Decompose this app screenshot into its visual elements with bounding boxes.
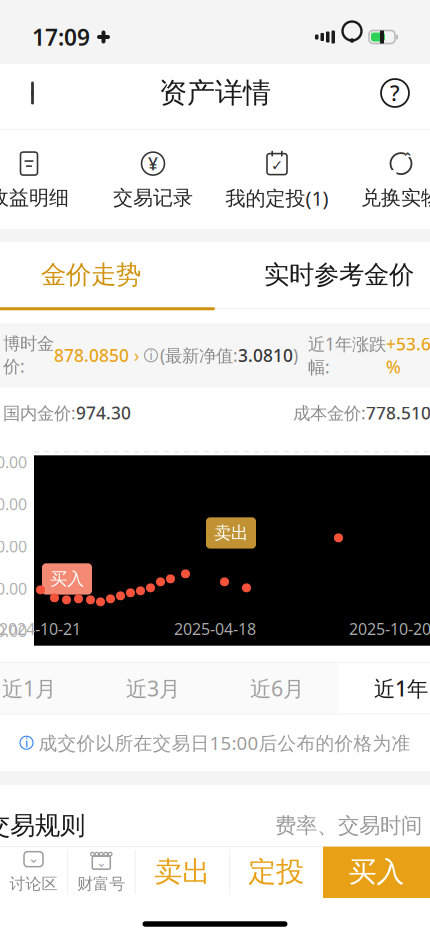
staticText: 1050.00 (0, 451, 27, 472)
button[interactable]: 近1年 (339, 662, 430, 714)
button[interactable]: 近1月 (0, 662, 91, 714)
staticText: › (129, 344, 139, 367)
button[interactable]: 金价走势 (0, 242, 215, 307)
staticText: ✓ (271, 157, 283, 173)
staticText: 近3月 (126, 674, 180, 702)
staticText: 成本金价: (293, 401, 366, 424)
staticText: (最新净值: (160, 344, 238, 367)
staticText: 收益明细 (0, 186, 69, 210)
staticText: 974.30 (76, 401, 131, 424)
button[interactable]: 帮助 (372, 70, 418, 116)
button[interactable]: ⌃ (339, 151, 430, 210)
staticText: 买入 (50, 568, 84, 590)
staticText: 费率、交易时间 (275, 812, 422, 839)
staticText: 2024-10-21 (0, 618, 81, 639)
staticText: 750.00 (0, 536, 27, 557)
staticText: 900.00 (0, 493, 27, 515)
staticText: 财富号 (77, 874, 125, 894)
staticText: +53.62% (386, 332, 430, 378)
staticText: 2025-04-18 (174, 618, 256, 639)
staticText: ⌃ (402, 150, 413, 165)
staticText: ) (293, 344, 298, 367)
staticText: 国内金价: (3, 401, 76, 424)
button[interactable]: 定投 (230, 846, 323, 898)
button[interactable]: 收益明细 (0, 151, 91, 210)
staticText: ¥ (148, 152, 158, 175)
staticText: ⌄ (28, 851, 39, 866)
staticText: 3.0810 (238, 344, 293, 367)
staticText: 878.0850 (54, 344, 129, 367)
button[interactable]: 实时参考金价 (215, 242, 430, 307)
staticText: 450.00 (0, 620, 27, 641)
button[interactable]: ✓ (215, 150, 339, 211)
staticText: 我的定投(1) (225, 185, 328, 211)
staticText: i (149, 347, 152, 363)
staticText: 交易记录 (113, 186, 193, 210)
staticText: i (25, 735, 28, 751)
staticText: 2025-10-20 (349, 618, 430, 639)
staticText: 近1年 (374, 674, 428, 702)
button[interactable]: ⌄ (0, 846, 67, 898)
staticText: 买入 (348, 855, 404, 889)
staticText: 实时参考金价 (264, 259, 414, 290)
staticText: 近1年涨跌幅: (308, 332, 386, 378)
staticText: 成交价以所在交易日15:00后公布的价格为准 (38, 730, 410, 755)
staticText: 近6月 (250, 674, 304, 702)
staticText: ? (390, 79, 400, 107)
button[interactable]: 近6月 (215, 662, 339, 714)
staticText: 778.5106 (366, 401, 430, 424)
staticText: 定投 (248, 855, 304, 889)
staticText: 近1月 (2, 674, 56, 702)
staticText: 卖出 (154, 855, 210, 889)
button[interactable]: 交易规则 (0, 785, 430, 866)
staticText: 资产详情 (159, 76, 271, 110)
button[interactable]: 卖出 (136, 846, 229, 898)
button[interactable]: 产品详情 (0, 867, 430, 932)
staticText: 卖出 (214, 522, 248, 544)
button[interactable]: ¥ (91, 151, 215, 210)
button[interactable]: 返回 (12, 70, 58, 116)
staticText: 兑换实物 (361, 186, 430, 210)
staticText: 600.00 (0, 578, 27, 599)
staticText: 金价走势 (41, 259, 141, 290)
staticText: 博时金价: (3, 333, 54, 377)
staticText: 博时黄金ETF联接C (248, 893, 422, 921)
staticText: 交易规则 (0, 810, 85, 841)
button[interactable]: 买入 (323, 846, 430, 898)
staticText: ⌄ (96, 856, 106, 869)
staticText: 17:09 (32, 22, 90, 52)
button[interactable]: ⌄ (68, 846, 135, 898)
button[interactable]: 近3月 (91, 662, 215, 714)
staticText: 讨论区 (9, 874, 57, 894)
